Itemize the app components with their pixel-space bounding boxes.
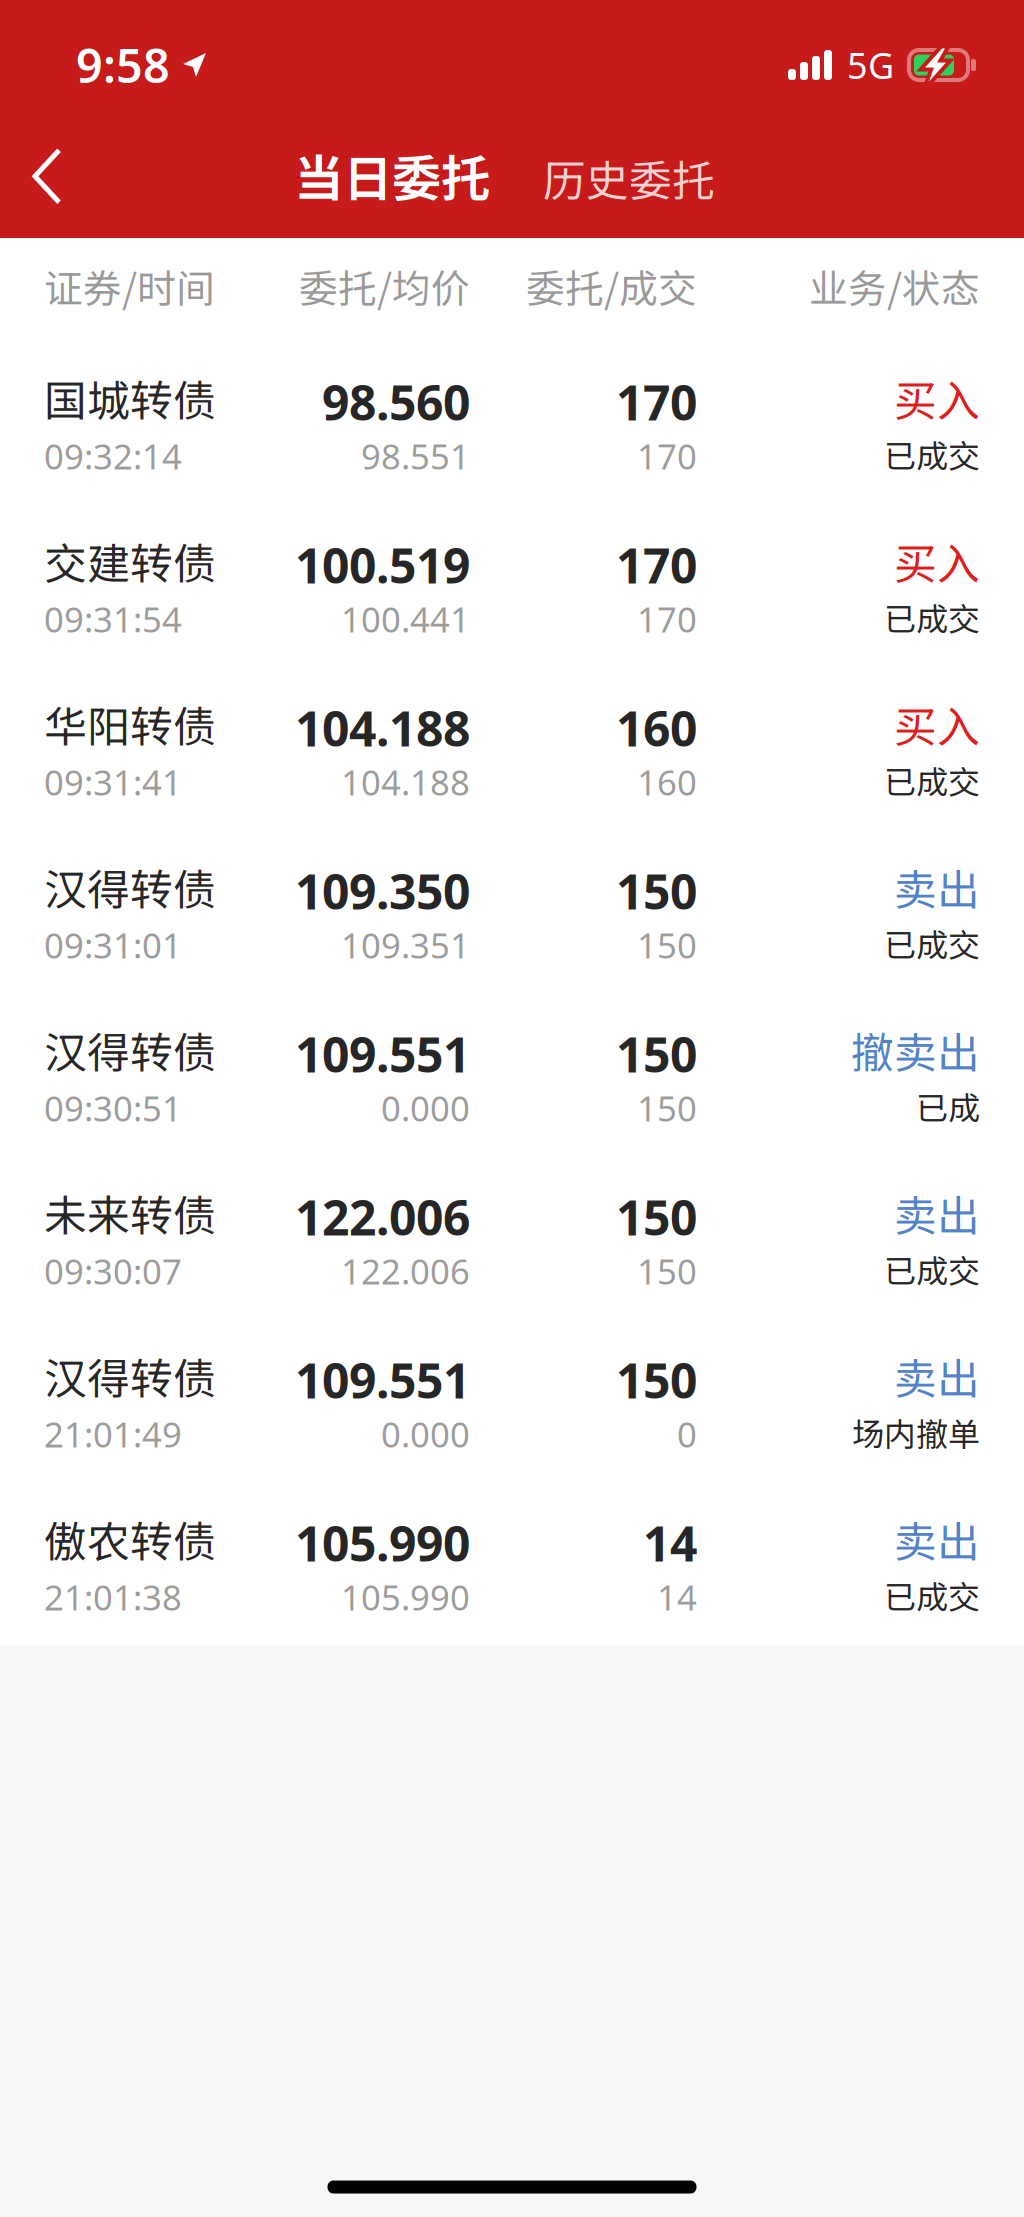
staticText: 09:31:01 (44, 922, 182, 968)
staticText: 109.551 (295, 1348, 470, 1412)
staticText: 已成交 (884, 1246, 980, 1292)
staticText: 证券/时间 (44, 258, 215, 314)
staticText: 21:01:38 (44, 1574, 182, 1620)
staticText: 场内撤单 (852, 1409, 980, 1455)
staticText: 已成交 (884, 1572, 980, 1618)
staticText: 委托/均价 (299, 258, 470, 314)
staticText: 09:30:07 (44, 1248, 182, 1294)
staticText: 09:32:14 (44, 433, 182, 479)
staticText: 已成交 (884, 431, 980, 477)
staticText: 0.000 (381, 1085, 470, 1131)
staticText: 160 (637, 759, 697, 805)
staticText: 卖出 (894, 856, 980, 918)
staticText: 104.188 (295, 696, 470, 760)
staticText: 买入 (894, 693, 980, 755)
staticText: 150 (637, 922, 697, 968)
staticText: 14 (657, 1574, 697, 1620)
staticText: 未来转债 (44, 1182, 216, 1244)
staticText: 109.350 (295, 859, 470, 923)
staticText: 汉得转债 (44, 1019, 216, 1081)
button[interactable]: 汉得转债 (0, 990, 1024, 1153)
staticText: 09:31:54 (44, 596, 182, 642)
staticText: 已成交 (884, 920, 980, 966)
staticText: 170 (637, 596, 697, 642)
staticText: 109.351 (341, 922, 470, 968)
staticText: 150 (616, 859, 697, 923)
staticText: 已成交 (884, 594, 980, 640)
staticText: 170 (616, 533, 697, 597)
staticText: 买入 (894, 530, 980, 592)
staticText: 委托/成交 (526, 258, 697, 314)
staticText: 150 (637, 1248, 697, 1294)
staticText: 109.551 (295, 1022, 470, 1086)
staticText: 150 (616, 1348, 697, 1412)
button[interactable]: 傲农转债 (0, 1479, 1024, 1642)
staticText: 卖出 (894, 1508, 980, 1570)
staticText: 14 (643, 1511, 697, 1575)
staticText: 已成 (916, 1083, 980, 1129)
staticText: 09:30:51 (44, 1085, 182, 1131)
staticText: 0 (677, 1411, 697, 1457)
button[interactable]: 未来转债 (0, 1153, 1024, 1316)
button[interactable]: 汉得转债 (0, 1316, 1024, 1479)
staticText: 160 (616, 696, 697, 760)
staticText: 122.006 (341, 1248, 470, 1294)
staticText: 汉得转债 (44, 856, 216, 918)
staticText: 09:31:41 (44, 759, 182, 805)
staticText: 105.990 (341, 1574, 470, 1620)
staticText: 0.000 (381, 1411, 470, 1457)
staticText: 98.560 (322, 370, 470, 434)
staticText: 150 (616, 1022, 697, 1086)
staticText: 170 (616, 370, 697, 434)
staticText: 9:58 (76, 34, 170, 96)
staticText: 当日委托 (294, 139, 490, 211)
staticText: 傲农转债 (44, 1508, 216, 1570)
staticText: 100.519 (295, 533, 470, 597)
staticText: 卖出 (894, 1345, 980, 1407)
staticText: 撤卖出 (851, 1019, 980, 1081)
staticText: 21:01:49 (44, 1411, 182, 1457)
button[interactable]: 华阳转债 (0, 664, 1024, 827)
button[interactable]: 当日委托 (290, 138, 494, 230)
staticText: 卖出 (894, 1182, 980, 1244)
staticText: 汉得转债 (44, 1345, 216, 1407)
staticText: 交建转债 (44, 530, 216, 592)
button[interactable]: 历史委托 (539, 148, 719, 230)
staticText: 国城转债 (44, 367, 216, 429)
staticText: 买入 (894, 367, 980, 429)
button[interactable]: 国城转债 (0, 338, 1024, 501)
button[interactable]: 返回 (0, 138, 102, 219)
staticText: 170 (637, 433, 697, 479)
staticText: 已成交 (884, 757, 980, 803)
staticText: 105.990 (295, 1511, 470, 1575)
staticText: 122.006 (295, 1185, 470, 1249)
staticText: 华阳转债 (44, 693, 216, 755)
button[interactable]: 汉得转债 (0, 827, 1024, 990)
staticText: 150 (616, 1185, 697, 1249)
staticText: 5G (847, 41, 894, 89)
staticText: 业务/状态 (809, 258, 980, 314)
staticText: 104.188 (341, 759, 470, 805)
staticText: 98.551 (361, 433, 470, 479)
button[interactable]: 交建转债 (0, 501, 1024, 664)
staticText: 100.441 (341, 596, 470, 642)
staticText: 150 (637, 1085, 697, 1131)
staticText: 历史委托 (543, 147, 715, 209)
